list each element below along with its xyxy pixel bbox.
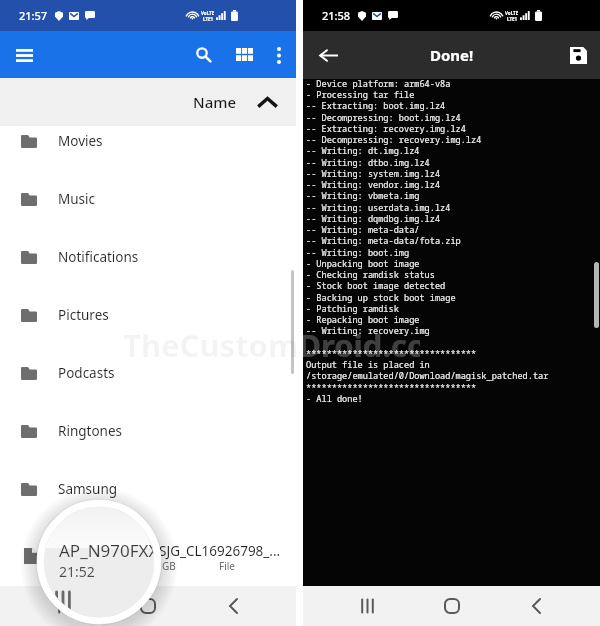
staticText: LTE1 bbox=[507, 16, 518, 22]
staticText: 21:52 bbox=[59, 562, 95, 581]
button[interactable]: Notifications bbox=[0, 228, 296, 286]
staticText: LTE1 bbox=[203, 16, 214, 22]
staticText: /storage/emulated/0/Download/magisk_patc… bbox=[306, 370, 549, 382]
staticText: -- Decompressing: recovery.img.lz4 bbox=[306, 134, 482, 146]
staticText: ********************************* bbox=[306, 348, 477, 360]
staticText: GB bbox=[162, 559, 176, 573]
staticText: VoLTE bbox=[201, 10, 215, 16]
button[interactable]: AP_N970FXXSJG_CL16926798_... bbox=[0, 518, 296, 572]
staticText: -- Writing: recovery.img bbox=[306, 325, 430, 337]
staticText: - Unpacking boot image bbox=[306, 258, 420, 270]
button[interactable]: Grid view bbox=[230, 40, 259, 69]
staticText: ********************************* bbox=[306, 382, 477, 394]
staticText: -- Decompressing: boot.img.lz4 bbox=[306, 112, 461, 124]
staticText: -- Writing: meta-data/ bbox=[306, 224, 420, 236]
button[interactable]: Back bbox=[515, 586, 557, 626]
staticText: -- Writing: vbmeta.img bbox=[306, 190, 420, 202]
staticText: Movies bbox=[58, 132, 103, 150]
button[interactable]: Recents bbox=[346, 586, 388, 626]
staticText: 21:57 bbox=[19, 8, 48, 23]
button[interactable]: Podcasts bbox=[0, 344, 296, 402]
staticText: - All done! bbox=[306, 393, 363, 405]
staticText: Ringtones bbox=[58, 422, 122, 440]
button[interactable]: Menu bbox=[9, 40, 39, 70]
button[interactable]: Movies bbox=[0, 112, 296, 170]
staticText: -- Extracting: boot.img.lz4 bbox=[306, 100, 446, 112]
staticText: Output file is placed in bbox=[306, 359, 430, 371]
button[interactable]: Music bbox=[0, 170, 296, 228]
staticText: - Backing up stock boot image bbox=[306, 292, 456, 304]
button[interactable]: Ringtones bbox=[0, 402, 296, 460]
staticText: -- Writing: dqmdbg.img.lz4 bbox=[306, 213, 441, 225]
staticText: AP_N970FXXSJG_CL16926798_... bbox=[80, 542, 281, 560]
staticText: -- Writing: vendor.img.lz4 bbox=[306, 179, 441, 191]
staticText: - Checking ramdisk status bbox=[306, 269, 435, 281]
button[interactable]: Pictures bbox=[0, 286, 296, 344]
staticText: -- Writing: system.img.lz4 bbox=[306, 168, 441, 180]
staticText: 21:52 bbox=[80, 559, 106, 573]
button[interactable]: Search bbox=[189, 40, 218, 69]
button[interactable]: Home bbox=[127, 586, 169, 626]
staticText: Done! bbox=[430, 45, 474, 65]
staticText: VoLTE bbox=[505, 10, 519, 16]
staticText: Pictures bbox=[58, 306, 109, 324]
staticText: Notifications bbox=[58, 248, 139, 266]
button[interactable]: Name bbox=[193, 92, 277, 112]
staticText: File bbox=[219, 559, 235, 573]
staticText: Podcasts bbox=[58, 364, 115, 382]
button[interactable]: Samsung bbox=[0, 460, 296, 518]
staticText: -- Writing: meta-data/fota.zip bbox=[306, 235, 461, 247]
staticText: -- Writing: userdata.img.lz4 bbox=[306, 202, 451, 214]
staticText: -- Extracting: recovery.img.lz4 bbox=[306, 123, 466, 135]
staticText: TheCustomDroid.com bbox=[303, 324, 420, 366]
button[interactable]: Home bbox=[431, 586, 473, 626]
staticText: Samsung bbox=[58, 480, 118, 498]
staticText: - Stock boot image detected bbox=[306, 280, 446, 292]
staticText: -- Writing: dt.img.lz4 bbox=[306, 145, 420, 157]
staticText: - Repacking boot image bbox=[306, 314, 420, 326]
staticText: -- Writing: dtbo.img.lz4 bbox=[306, 157, 430, 169]
button[interactable]: Save bbox=[565, 42, 591, 68]
button[interactable]: More options bbox=[267, 43, 291, 67]
staticText: - Patching ramdisk bbox=[306, 303, 399, 315]
staticText: - Device platform: arm64-v8a bbox=[306, 78, 451, 90]
staticText: AP_N970FXXS bbox=[59, 539, 154, 562]
staticText: 21:58 bbox=[322, 8, 351, 23]
staticText: - Processing tar file bbox=[306, 89, 415, 101]
button[interactable]: Recents bbox=[43, 586, 85, 626]
staticText: Name bbox=[193, 92, 237, 112]
staticText: -- Writing: boot.img bbox=[306, 247, 410, 259]
staticText: Music bbox=[58, 190, 96, 208]
staticText: TheCustomDroid.com bbox=[123, 324, 296, 366]
button[interactable]: Back bbox=[314, 41, 342, 69]
button[interactable]: Back bbox=[212, 586, 254, 626]
